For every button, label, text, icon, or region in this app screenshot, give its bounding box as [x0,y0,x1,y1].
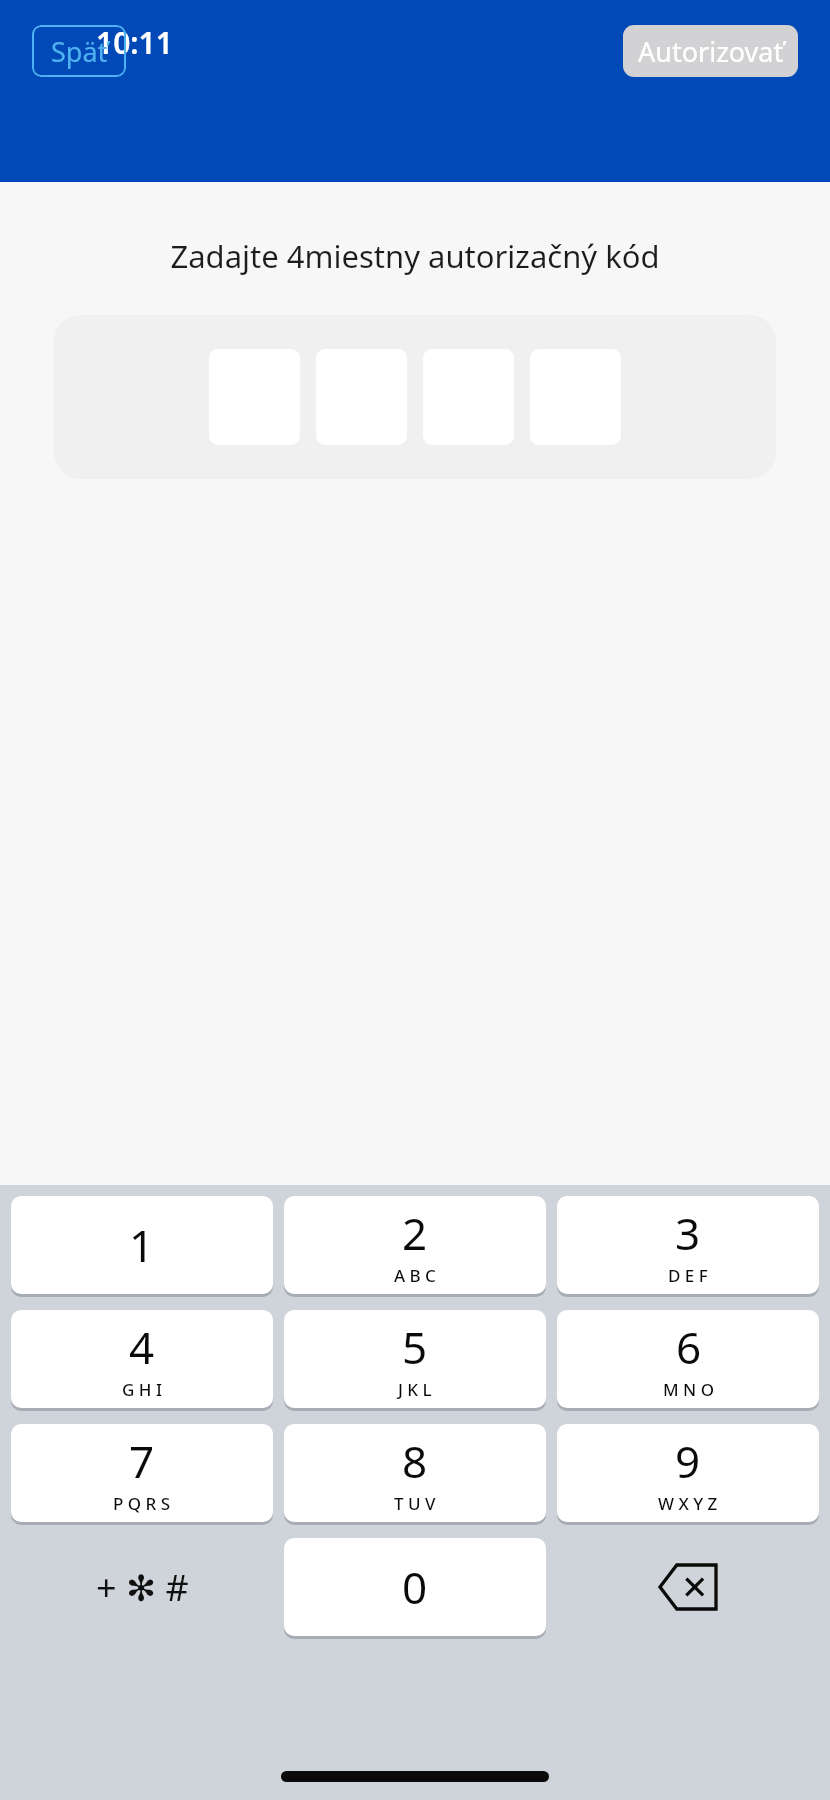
staticText: 6 [676,1317,702,1377]
staticText: Späť [51,33,108,70]
staticText: 0 [402,1557,428,1617]
staticText: M N O [663,1378,714,1401]
staticText: G H I [122,1378,162,1401]
staticText: + ✻ # [96,1563,189,1612]
staticText: D E F [668,1264,708,1287]
button[interactable]: 7 [11,1424,273,1522]
staticText: 3 [675,1203,701,1263]
staticText: W X Y Z [658,1492,718,1515]
staticText: T U V [394,1492,436,1515]
staticText: 9 [675,1431,701,1491]
button[interactable]: Backspace [557,1538,819,1636]
staticText: 8 [402,1431,428,1491]
staticText: J K L [398,1378,432,1401]
button[interactable]: 0 [284,1538,546,1636]
staticText: Zadajte 4miestny autorizačný kód [0,235,830,277]
staticText: Autorizovať [638,33,784,70]
button[interactable]: 9 [557,1424,819,1522]
staticText: P Q R S [113,1492,171,1515]
button[interactable]: Plus star hash [11,1538,273,1636]
button[interactable]: 3 [557,1196,819,1294]
button[interactable]: 4 [11,1310,273,1408]
button[interactable]: 1 [11,1196,273,1294]
staticText: A B C [394,1264,436,1287]
staticText: 4 [129,1317,155,1377]
button[interactable]: 2 [284,1196,546,1294]
button[interactable]: 6 [557,1310,819,1408]
staticText: 7 [129,1431,155,1491]
button[interactable]: Autorizovať [623,25,798,77]
button[interactable]: 8 [284,1424,546,1522]
staticText: 5G [668,24,704,61]
button[interactable]: Späť [32,25,126,77]
staticText: 1 [129,1215,155,1275]
staticText: 10:11 [96,22,173,63]
staticText: 5 [402,1317,428,1377]
button[interactable]: 5 [284,1310,546,1408]
staticText: 2 [402,1203,428,1263]
